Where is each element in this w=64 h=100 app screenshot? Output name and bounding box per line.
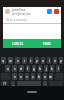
button[interactable]: k: [50, 65, 54, 72]
staticText: v: [32, 74, 34, 79]
button[interactable]: v: [31, 73, 35, 80]
staticText: p: [60, 58, 63, 63]
button[interactable]: g: [32, 65, 36, 72]
button[interactable]: j: [44, 65, 48, 72]
staticText: CANCEL: [12, 42, 24, 46]
button[interactable]: z: [12, 73, 17, 80]
staticText: Jane Doe: [12, 8, 26, 12]
staticText: b: [38, 74, 41, 79]
button[interactable]: w: [8, 57, 13, 64]
staticText: ?1: [3, 81, 7, 86]
button[interactable]: o: [53, 57, 57, 64]
button[interactable]: q: [1, 57, 6, 64]
button[interactable]: ,: [11, 81, 15, 86]
button[interactable]: Share to Gmail: [54, 9, 59, 14]
staticText: q: [2, 58, 5, 63]
button[interactable]: h: [38, 65, 42, 72]
staticText: r: [24, 58, 26, 63]
button[interactable]: e: [15, 57, 20, 64]
staticText: j: [46, 66, 47, 71]
staticText: u: [42, 58, 45, 63]
button[interactable]: y: [35, 57, 39, 64]
staticText: ,: [13, 81, 14, 86]
button[interactable]: s: [12, 65, 17, 72]
staticText: y: [36, 58, 38, 63]
staticText: l: [58, 66, 59, 71]
staticText: t: [30, 58, 32, 63]
button[interactable]: u: [41, 57, 45, 64]
staticText: d: [20, 66, 23, 71]
button[interactable]: Share to Twitter: [47, 9, 52, 14]
button[interactable]: p: [59, 57, 63, 64]
button[interactable]: m: [49, 73, 53, 80]
staticText: e: [17, 58, 19, 63]
button[interactable]: c: [25, 73, 29, 80]
button[interactable]: f: [26, 65, 30, 72]
staticText: i: [49, 58, 50, 63]
button[interactable]: ?1: [1, 81, 9, 86]
button[interactable]: b: [37, 73, 41, 80]
staticText: a: [7, 66, 9, 71]
button[interactable]: l: [56, 65, 60, 72]
staticText: jane@mail.com: [12, 12, 31, 16]
staticText: n: [44, 74, 47, 79]
staticText: h: [39, 66, 42, 71]
button[interactable]: SEND: [32, 39, 61, 48]
staticText: c: [26, 74, 28, 79]
staticText: s: [14, 66, 16, 71]
button[interactable]: i: [47, 57, 51, 64]
staticText: z: [14, 74, 16, 79]
staticText: x: [20, 74, 22, 79]
staticText: k: [51, 66, 53, 71]
staticText: m: [49, 74, 53, 79]
staticText: g: [33, 66, 36, 71]
staticText: .: [45, 81, 46, 86]
button[interactable]: CANCEL: [3, 39, 32, 48]
button[interactable]: d: [19, 65, 24, 72]
button[interactable]: t: [29, 57, 33, 64]
staticText: w: [9, 58, 12, 63]
button[interactable]: n: [43, 73, 47, 80]
button[interactable]: .: [43, 81, 47, 86]
staticText: SEND: [43, 42, 51, 46]
staticText: o: [54, 58, 57, 63]
button[interactable]: a: [5, 65, 10, 72]
button[interactable]: x: [19, 73, 23, 80]
staticText: f: [27, 66, 29, 71]
button[interactable]: r: [22, 57, 27, 64]
staticText: Write a message: [6, 18, 28, 22]
